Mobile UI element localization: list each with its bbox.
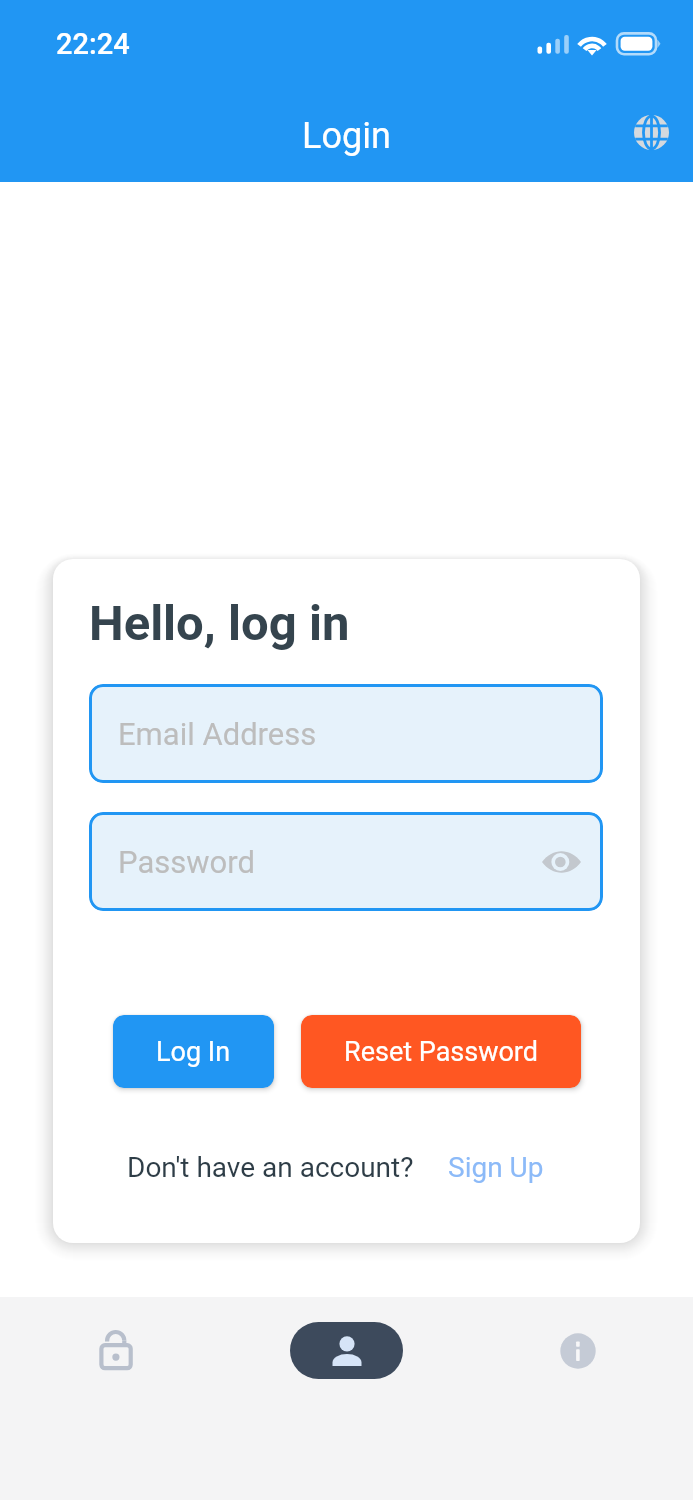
staticText: Hello, log in bbox=[89, 595, 350, 652]
button[interactable]: Log In bbox=[113, 1015, 274, 1088]
staticText: Login bbox=[302, 115, 391, 157]
button[interactable]: Email Address bbox=[89, 684, 603, 783]
button[interactable]: Lock bbox=[59, 1322, 172, 1379]
staticText: Log In bbox=[156, 1036, 231, 1068]
button[interactable]: Reset Password bbox=[301, 1015, 581, 1088]
button[interactable]: Change language bbox=[627, 108, 676, 157]
staticText: Password bbox=[118, 844, 255, 880]
button[interactable]: Profile bbox=[290, 1322, 403, 1379]
button[interactable]: Show password bbox=[539, 840, 583, 884]
staticText: Sign Up bbox=[448, 1151, 544, 1184]
staticText: 22:24 bbox=[56, 27, 130, 61]
staticText: Email Address bbox=[118, 716, 317, 752]
button[interactable]: Info bbox=[521, 1322, 634, 1379]
button[interactable]: Sign Up bbox=[437, 1139, 555, 1196]
staticText: Don't have an account? bbox=[127, 1151, 414, 1184]
staticText: Reset Password bbox=[344, 1036, 538, 1068]
button[interactable]: Password bbox=[89, 812, 603, 911]
